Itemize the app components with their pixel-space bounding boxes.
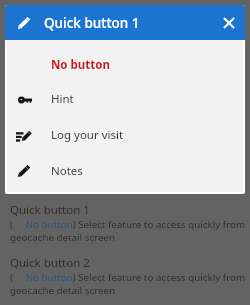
button[interactable]: Log your visit bbox=[5, 117, 245, 153]
button[interactable]: Hint bbox=[5, 81, 245, 117]
staticText: ( No button) Select feature to access qu… bbox=[10, 218, 248, 244]
button[interactable]: Notes bbox=[5, 153, 245, 189]
staticText: Quick button 2 bbox=[10, 255, 90, 271]
button[interactable]: Close bbox=[217, 11, 241, 35]
button[interactable]: Quick button 1 bbox=[0, 202, 250, 244]
staticText: ( No button) Select feature to access qu… bbox=[10, 271, 248, 297]
staticText: No button bbox=[51, 57, 110, 73]
staticText: Notes bbox=[51, 163, 83, 179]
staticText: Log your visit bbox=[51, 127, 124, 143]
button[interactable]: Quick button 2 bbox=[0, 255, 250, 297]
staticText: Hint bbox=[51, 91, 74, 107]
staticText: Quick button 1 bbox=[44, 14, 140, 32]
staticText: Quick button 1 bbox=[10, 202, 90, 218]
button[interactable]: No button bbox=[5, 46, 245, 81]
